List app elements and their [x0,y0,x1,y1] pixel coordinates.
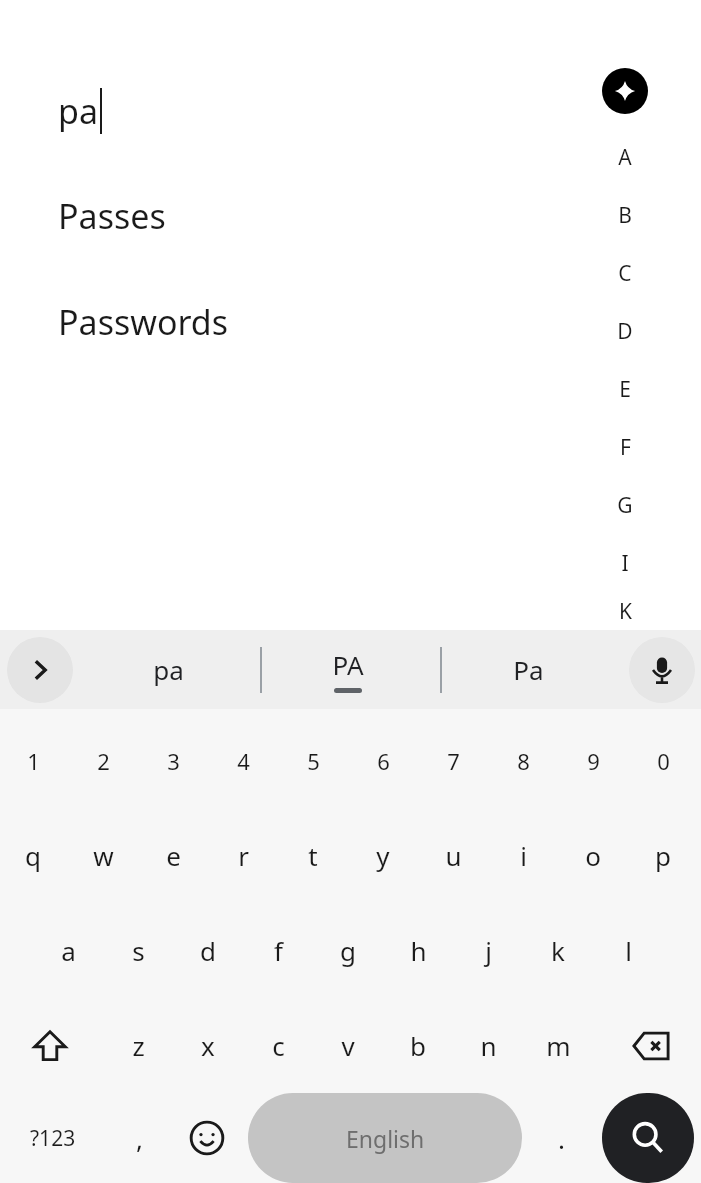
button[interactable]: t [278,808,348,903]
button[interactable]: Backspace [615,1010,687,1082]
button[interactable]: B [608,186,642,244]
staticText: 7 [447,746,460,776]
button[interactable]: o [558,808,628,903]
button[interactable]: e [138,808,208,903]
button[interactable]: 2 [68,713,138,808]
button[interactable]: 6 [348,713,418,808]
staticText: k [551,933,565,968]
staticText: 3 [167,746,180,776]
button[interactable]: 8 [488,713,558,808]
button[interactable]: s [103,903,173,998]
staticText: b [410,1028,426,1063]
staticText: Pa [513,652,544,687]
staticText: q [25,838,41,873]
button[interactable]: h [383,903,453,998]
button[interactable]: l [593,903,663,998]
button[interactable]: 9 [558,713,628,808]
button[interactable]: 5 [278,713,348,808]
button[interactable]: F [608,418,642,476]
button[interactable]: Search [602,1093,694,1183]
button[interactable]: pa [98,630,238,709]
button[interactable]: D [608,302,642,360]
button[interactable]: PA [278,630,418,709]
staticText: z [132,1028,145,1063]
staticText: t [308,838,318,873]
button[interactable]: v [313,998,383,1093]
staticText: r [238,838,249,873]
button[interactable]: Pa [458,630,598,709]
button[interactable]: 4 [208,713,278,808]
button[interactable]: , [106,1093,172,1183]
button[interactable]: u [418,808,488,903]
button[interactable]: Shift [14,1010,86,1082]
staticText: p [655,838,671,873]
button[interactable]: 1 [0,713,68,808]
button[interactable]: ?123 [10,1093,96,1183]
button[interactable]: . [530,1093,592,1183]
staticText: d [200,933,216,968]
staticText: G [617,491,633,520]
button[interactable]: pa [58,88,102,134]
staticText: i [520,838,527,873]
staticText: a [61,933,76,968]
button[interactable]: I [608,534,642,592]
staticText: h [410,933,427,968]
button[interactable]: q [0,808,68,903]
button[interactable]: p [628,808,698,903]
staticText: 8 [517,746,530,776]
staticText: n [480,1028,497,1063]
staticText: g [340,933,356,968]
button[interactable]: More suggestions [7,637,73,703]
staticText: x [201,1028,215,1063]
staticText: s [132,933,145,968]
button[interactable]: m [523,998,593,1093]
button[interactable]: n [453,998,523,1093]
button[interactable]: Voice input [629,637,695,703]
button[interactable]: y [348,808,418,903]
button[interactable]: i [488,808,558,903]
button[interactable]: c [243,998,313,1093]
button[interactable]: Passes [58,193,166,239]
button[interactable]: E [608,360,642,418]
button[interactable]: w [68,808,138,903]
button[interactable]: Assistant [602,68,648,114]
staticText: F [620,433,631,462]
button[interactable]: b [383,998,453,1093]
button[interactable]: C [608,244,642,302]
button[interactable]: f [243,903,313,998]
button[interactable]: English [248,1093,522,1183]
staticText: f [274,933,283,968]
button[interactable]: k [523,903,593,998]
button[interactable]: Emoji [174,1105,240,1171]
staticText: c [272,1028,285,1063]
staticText: pa [58,88,98,134]
staticText: PA [332,647,364,682]
button[interactable]: Passwords [58,299,229,345]
staticText: A [618,143,632,172]
staticText: 4 [237,746,250,776]
staticText: o [585,838,601,873]
staticText: B [618,201,632,230]
staticText: K [619,597,632,626]
button[interactable]: j [453,903,523,998]
staticText: j [485,933,492,968]
button[interactable]: A [608,128,642,186]
staticText: v [341,1028,355,1063]
button[interactable]: K [608,592,642,630]
button[interactable]: z [103,998,173,1093]
button[interactable]: G [608,476,642,534]
button[interactable]: r [208,808,278,903]
staticText: . [558,1121,565,1156]
button[interactable]: d [173,903,243,998]
staticText: y [376,838,390,873]
button[interactable]: 3 [138,713,208,808]
button[interactable]: 0 [628,713,698,808]
button[interactable]: g [313,903,383,998]
staticText: 0 [657,746,670,776]
staticText: ?123 [30,1124,76,1153]
button[interactable]: x [173,998,243,1093]
button[interactable]: a [33,903,103,998]
staticText: , [136,1121,143,1156]
staticText: C [618,259,632,288]
button[interactable]: 7 [418,713,488,808]
